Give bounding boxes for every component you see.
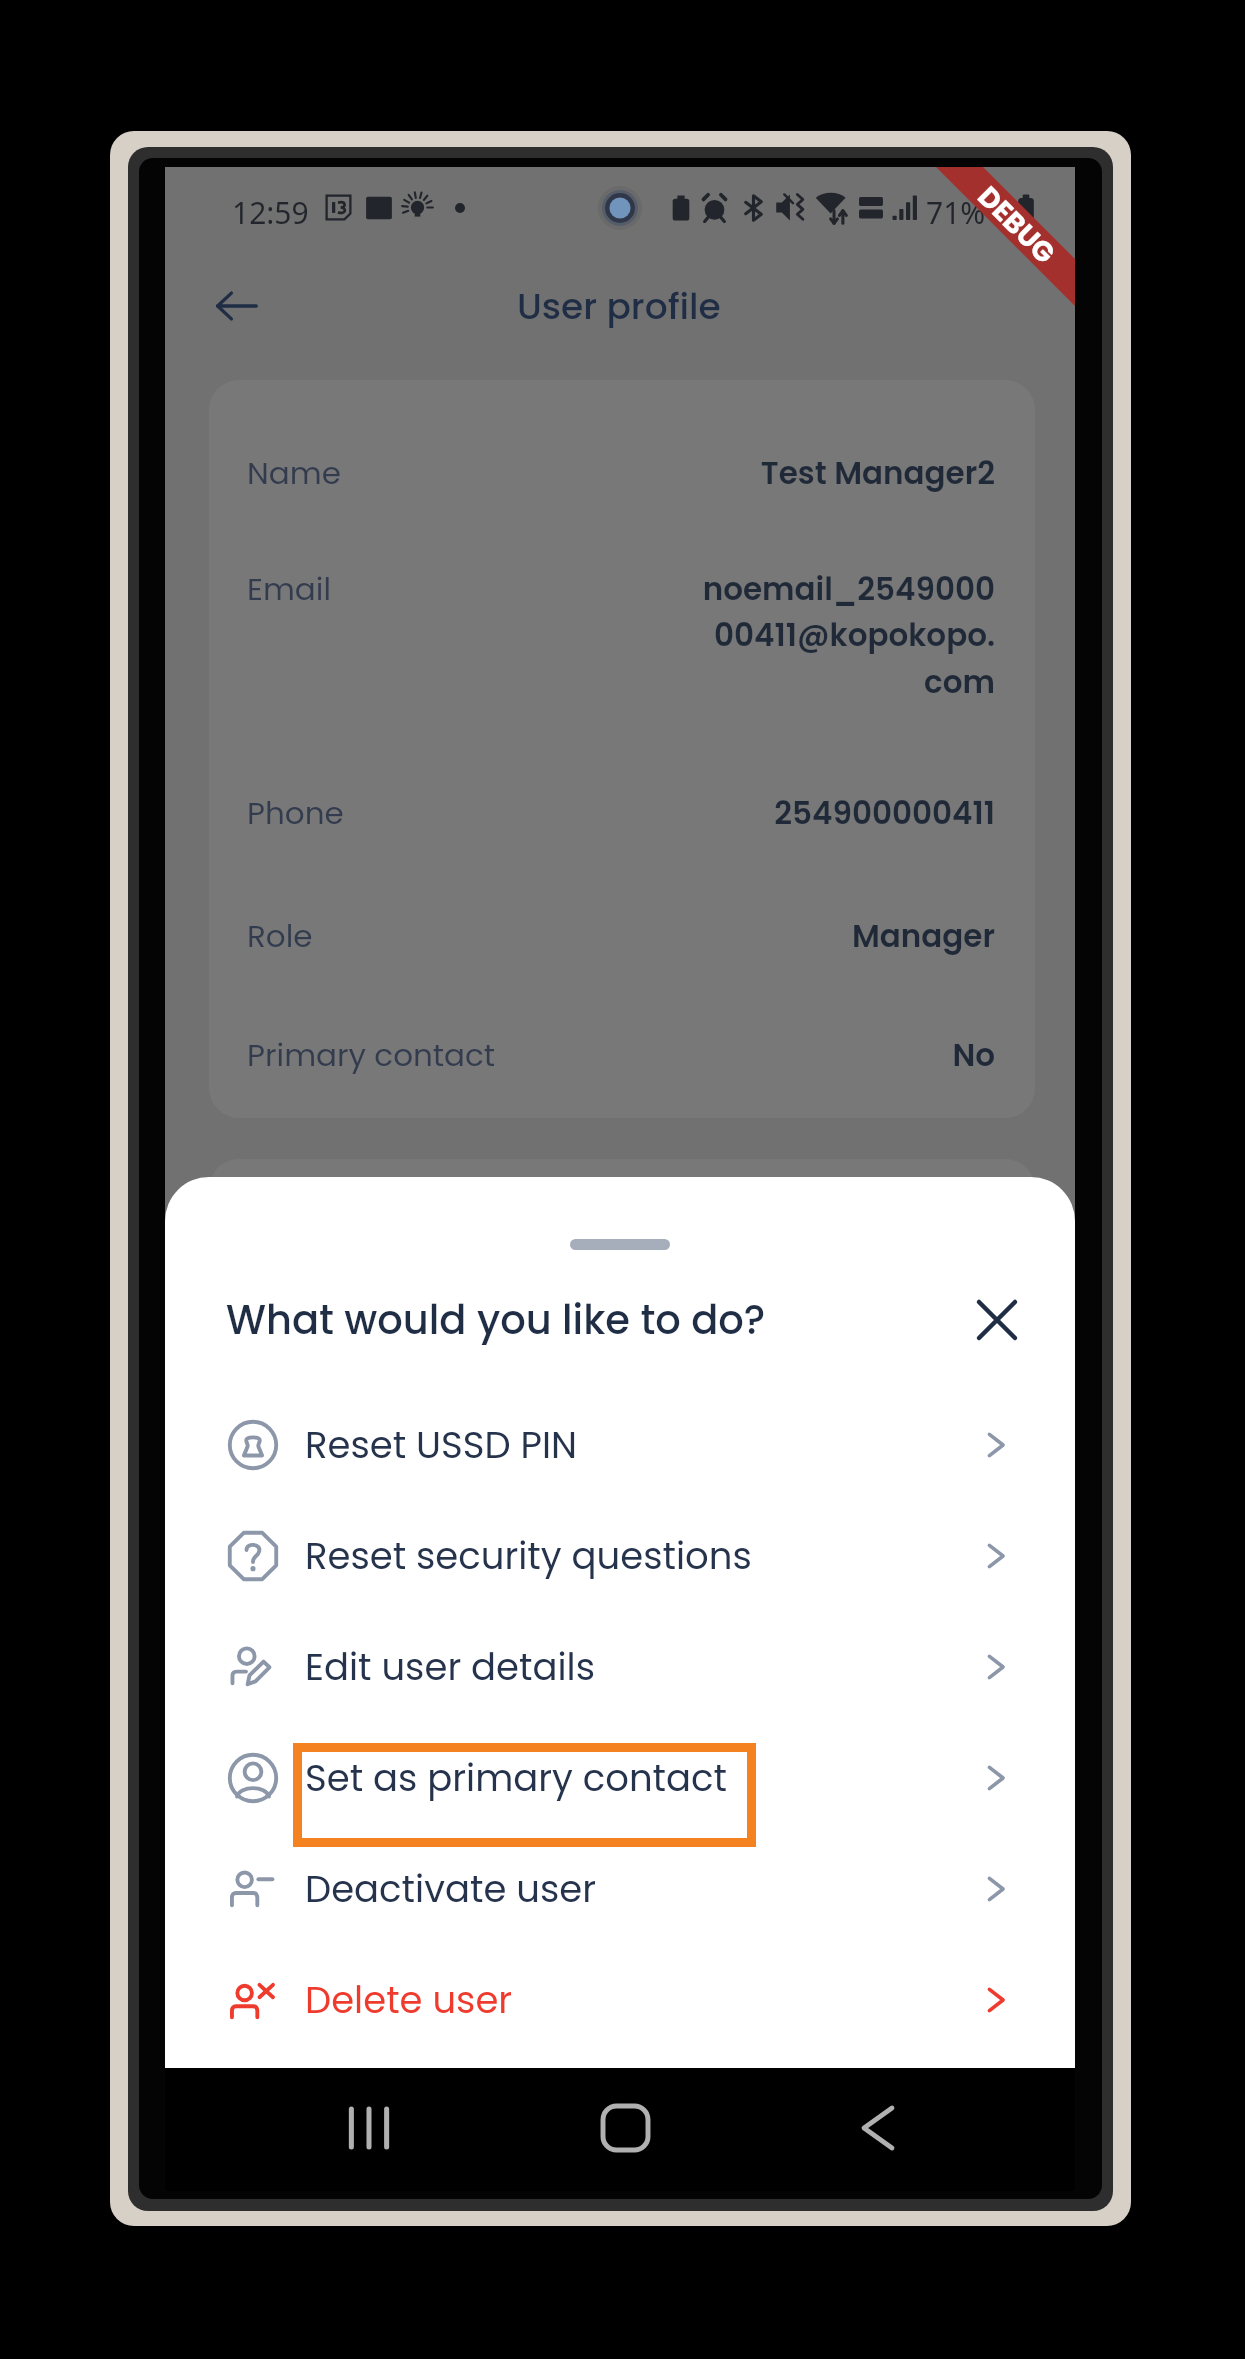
button[interactable]: Back	[839, 2089, 917, 2167]
staticText: 71%	[926, 192, 986, 233]
button[interactable]: Close	[964, 1287, 1030, 1353]
button[interactable]: Reset USSD PIN	[165, 1389, 1075, 1500]
staticText: What would you like to do?	[226, 1292, 766, 1348]
staticText: Phone	[247, 791, 344, 834]
staticText: Delete user	[305, 1974, 513, 2026]
staticText: Test Manager2	[699, 451, 995, 494]
staticText: Name	[247, 451, 341, 494]
staticText: Role	[247, 914, 313, 957]
staticText: No	[699, 1033, 995, 1076]
button[interactable]: Set as primary contact	[165, 1722, 1075, 1833]
staticText: Reset security questions	[305, 1530, 752, 1582]
staticText: 254900000411	[699, 791, 995, 834]
button[interactable]: Edit user details	[165, 1611, 1075, 1722]
staticText: 12:59	[232, 192, 309, 233]
staticText: User profile	[517, 281, 721, 331]
staticText: Manager	[699, 914, 995, 957]
staticText: noemail_254900000411@kopokopo.com	[699, 567, 995, 704]
staticText: Set as primary contact	[305, 1752, 727, 1804]
button[interactable]: Reset security questions	[165, 1500, 1075, 1611]
staticText: Primary contact	[247, 1033, 496, 1076]
button[interactable]: Deactivate user	[165, 1833, 1075, 1944]
button[interactable]: Delete user	[165, 1944, 1075, 2055]
staticText: Edit user details	[305, 1641, 596, 1693]
staticText: Email	[247, 567, 332, 610]
button[interactable]: Recents	[330, 2089, 408, 2167]
staticText: DEBUG	[969, 178, 1064, 273]
staticText: Deactivate user	[305, 1863, 596, 1915]
button[interactable]: Home	[586, 2089, 664, 2167]
staticText: Reset USSD PIN	[305, 1419, 578, 1471]
button[interactable]: Back	[202, 272, 270, 340]
